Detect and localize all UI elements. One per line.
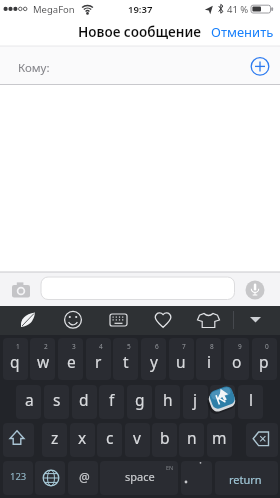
button[interactable] bbox=[127, 385, 152, 419]
staticText: c bbox=[106, 427, 114, 448]
button[interactable] bbox=[3, 423, 34, 457]
staticText: d bbox=[79, 389, 89, 410]
button[interactable] bbox=[181, 461, 212, 495]
staticText: t bbox=[123, 351, 129, 372]
button[interactable] bbox=[183, 385, 208, 419]
staticText: space bbox=[125, 469, 155, 484]
staticText: e bbox=[67, 351, 76, 372]
button[interactable] bbox=[210, 385, 235, 419]
button[interactable] bbox=[152, 423, 177, 457]
staticText: b bbox=[160, 427, 170, 448]
button[interactable] bbox=[57, 306, 89, 334]
staticText: return bbox=[229, 472, 262, 487]
button[interactable] bbox=[58, 338, 83, 380]
button[interactable] bbox=[3, 338, 28, 380]
button[interactable] bbox=[86, 338, 111, 380]
button[interactable] bbox=[30, 338, 55, 380]
staticText: i bbox=[207, 351, 211, 372]
staticText: 7 bbox=[182, 342, 186, 351]
staticText: 1 bbox=[16, 342, 20, 351]
button[interactable] bbox=[246, 423, 278, 457]
button[interactable] bbox=[207, 423, 232, 457]
button[interactable] bbox=[169, 338, 194, 380]
button[interactable] bbox=[97, 423, 122, 457]
button[interactable] bbox=[35, 461, 65, 495]
staticText: @ bbox=[79, 469, 90, 485]
button[interactable] bbox=[3, 461, 33, 495]
button[interactable] bbox=[68, 461, 98, 495]
staticText: m bbox=[212, 427, 227, 448]
staticText: EN bbox=[166, 464, 174, 471]
staticText: 3 bbox=[72, 342, 76, 351]
button[interactable] bbox=[125, 423, 150, 457]
button[interactable] bbox=[12, 306, 44, 334]
button[interactable] bbox=[141, 338, 166, 380]
button[interactable] bbox=[192, 306, 224, 334]
staticText: 9 bbox=[238, 342, 242, 351]
button[interactable] bbox=[238, 385, 263, 419]
staticText: q bbox=[10, 351, 20, 372]
staticText: 6 bbox=[155, 342, 159, 351]
staticText: p bbox=[259, 351, 269, 372]
button[interactable] bbox=[41, 277, 235, 300]
staticText: u bbox=[176, 351, 186, 372]
button[interactable] bbox=[9, 280, 35, 302]
button[interactable] bbox=[113, 338, 138, 380]
button[interactable] bbox=[196, 338, 221, 380]
staticText: x bbox=[78, 427, 87, 448]
button[interactable] bbox=[72, 385, 97, 419]
staticText: g bbox=[135, 389, 145, 410]
staticText: j bbox=[193, 389, 197, 410]
button[interactable] bbox=[242, 306, 270, 334]
staticText: Новое сообщение bbox=[78, 23, 201, 41]
staticText: Кому: bbox=[18, 60, 50, 76]
button[interactable] bbox=[215, 461, 278, 495]
button[interactable] bbox=[245, 51, 276, 82]
staticText: v bbox=[133, 427, 141, 448]
staticText: Отменить bbox=[211, 23, 274, 41]
button[interactable] bbox=[147, 306, 179, 334]
button[interactable] bbox=[155, 385, 180, 419]
staticText: r bbox=[95, 351, 102, 372]
button[interactable] bbox=[102, 306, 134, 334]
staticText: 2 bbox=[44, 342, 48, 351]
button[interactable] bbox=[16, 385, 41, 419]
button[interactable] bbox=[252, 338, 277, 380]
button[interactable] bbox=[244, 279, 266, 301]
staticText: y bbox=[150, 351, 158, 372]
button[interactable] bbox=[100, 461, 178, 495]
button[interactable] bbox=[99, 385, 124, 419]
staticText: 123 bbox=[10, 470, 27, 483]
staticText: 0 bbox=[265, 342, 269, 351]
staticText: a bbox=[25, 389, 34, 410]
staticText: 19:37 bbox=[128, 3, 153, 16]
button[interactable] bbox=[42, 423, 67, 457]
staticText: h bbox=[163, 389, 173, 410]
button[interactable] bbox=[70, 423, 95, 457]
staticText: n bbox=[187, 427, 197, 448]
staticText: 5 bbox=[127, 342, 131, 351]
staticText: MegaFon bbox=[33, 3, 75, 16]
staticText: f bbox=[109, 389, 115, 410]
staticText: 4 bbox=[99, 342, 103, 351]
button[interactable] bbox=[224, 338, 249, 380]
staticText: z bbox=[51, 427, 59, 448]
staticText: k bbox=[219, 389, 228, 410]
button[interactable] bbox=[179, 423, 204, 457]
staticText: s bbox=[53, 389, 61, 410]
staticText: 41 % bbox=[227, 3, 249, 16]
staticText: 8 bbox=[210, 342, 214, 351]
staticText: l bbox=[249, 389, 253, 410]
staticText: o bbox=[232, 351, 242, 372]
staticText: w bbox=[37, 351, 50, 372]
button[interactable]: Отменить bbox=[205, 22, 279, 41]
button[interactable] bbox=[44, 385, 69, 419]
